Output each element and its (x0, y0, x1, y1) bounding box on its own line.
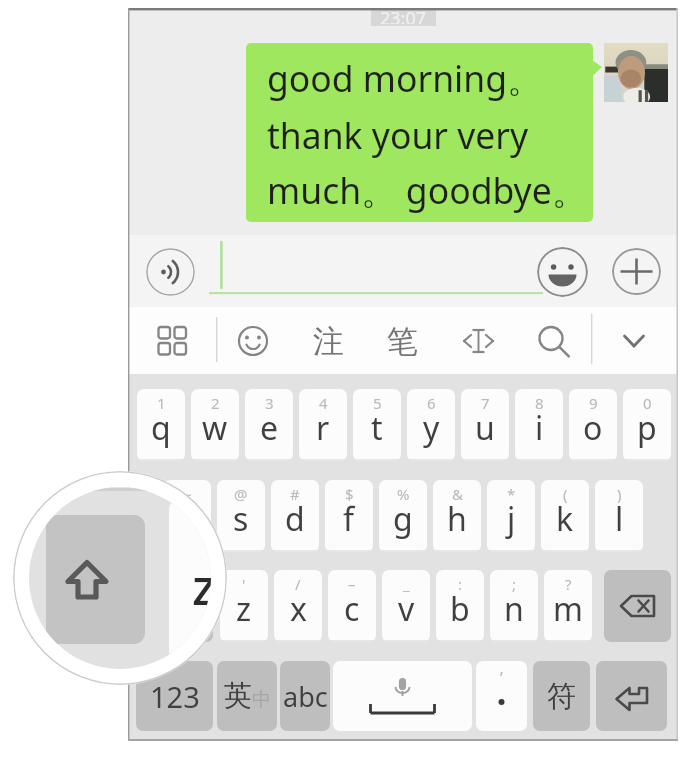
button[interactable]: Enter (596, 661, 667, 731)
staticText: ’ (500, 667, 503, 689)
staticText: g (393, 497, 413, 541)
button[interactable]: Message input (209, 238, 543, 296)
staticText: o (583, 406, 603, 450)
staticText: x (290, 587, 307, 631)
staticText: _ (403, 574, 410, 594)
button[interactable]: Search (531, 319, 575, 363)
staticText: @ (234, 484, 248, 504)
button[interactable]: 123 (136, 661, 213, 731)
staticText: : (458, 574, 463, 594)
button[interactable]: $ (325, 480, 373, 552)
button[interactable]: Emoji panel (231, 319, 275, 363)
button[interactable]: Contact avatar (604, 43, 668, 102)
button[interactable]: 4 (299, 389, 347, 461)
button[interactable]: Delete (604, 570, 671, 642)
button[interactable]: good morning。 thank your very much。 good… (246, 43, 593, 222)
button[interactable]: 9 (569, 389, 617, 461)
staticText: z (192, 552, 211, 620)
staticText: q (151, 406, 171, 450)
button[interactable]: 2 (191, 389, 239, 461)
staticText: l (615, 497, 624, 541)
staticText: v (398, 587, 415, 631)
button[interactable]: Switch language (217, 661, 277, 731)
staticText: ~ (183, 484, 192, 504)
staticText: 23:07 (380, 6, 427, 24)
button[interactable]: Voice message (146, 248, 195, 296)
staticText: d (285, 497, 305, 541)
staticText: abc (283, 678, 328, 715)
button[interactable]: _ (382, 570, 430, 642)
staticText: 注 (313, 322, 344, 361)
button[interactable]: @ (217, 480, 265, 552)
staticText: * (507, 484, 516, 504)
button[interactable]: ~ (163, 480, 211, 552)
staticText: ' (242, 574, 246, 594)
staticText: # (290, 484, 300, 504)
staticText: j (507, 497, 516, 541)
staticText: 英 (224, 678, 252, 713)
staticText: 中 (252, 688, 271, 712)
staticText: 3 (265, 393, 274, 413)
button[interactable]: # (271, 480, 319, 552)
button[interactable]: – (328, 570, 376, 642)
button[interactable]: Input methods (150, 319, 194, 363)
button[interactable]: / (274, 570, 322, 642)
staticText: 123 (150, 677, 200, 716)
staticText: z (236, 587, 252, 631)
staticText: h (447, 497, 467, 541)
staticText: % (397, 484, 410, 504)
staticText: b (450, 587, 470, 631)
staticText: r (316, 406, 330, 450)
staticText: / (295, 574, 301, 594)
staticText: n (504, 587, 524, 631)
staticText: 2 (211, 393, 220, 413)
button[interactable]: Space (333, 661, 472, 731)
button[interactable]: 0 (623, 389, 671, 461)
staticText: 6 (427, 393, 436, 413)
button[interactable]: Hide keyboard (612, 319, 656, 363)
button[interactable]: ; (490, 570, 538, 642)
staticText: f (343, 497, 355, 541)
button[interactable]: abc (280, 661, 330, 731)
button[interactable]: * (487, 480, 535, 552)
button[interactable]: More functions (612, 248, 661, 295)
button[interactable]: 8 (515, 389, 563, 461)
button[interactable]: 5 (353, 389, 401, 461)
button[interactable]: & (433, 480, 481, 552)
staticText: good morning。 thank your very much。 good… (267, 54, 588, 215)
staticText: ( (563, 484, 568, 504)
button[interactable]: ? (544, 570, 592, 642)
staticText: 笔 (387, 322, 418, 361)
button[interactable]: 6 (407, 389, 455, 461)
staticText: 0 (643, 393, 652, 413)
button[interactable]: 7 (461, 389, 509, 461)
staticText: i (535, 406, 544, 450)
button[interactable]: 符 (533, 661, 590, 731)
button[interactable]: Period (476, 661, 527, 731)
button[interactable]: ' (220, 570, 268, 642)
button[interactable]: : (436, 570, 484, 642)
staticText: 符 (547, 678, 576, 715)
staticText: $ (345, 484, 354, 504)
button[interactable]: 1 (137, 389, 185, 461)
button[interactable]: Emoji (537, 247, 588, 297)
button[interactable]: 笔 (380, 318, 424, 364)
button[interactable]: 注 (306, 318, 350, 364)
button[interactable]: ) (595, 480, 643, 552)
button[interactable]: % (379, 480, 427, 552)
staticText: p (637, 406, 657, 450)
button[interactable]: 3 (245, 389, 293, 461)
staticText: w (202, 406, 228, 450)
staticText: k (556, 497, 574, 541)
button[interactable]: Shift (137, 570, 213, 642)
staticText: 4 (319, 393, 328, 413)
staticText: t (371, 406, 383, 450)
button[interactable]: Text cursor control (456, 319, 500, 363)
staticText: 8 (535, 393, 544, 413)
staticText: s (233, 497, 249, 541)
button[interactable]: ( (541, 480, 589, 552)
staticText: 1 (157, 393, 166, 413)
staticText: & (452, 484, 463, 504)
staticText: m (553, 587, 583, 631)
staticText: 7 (481, 393, 490, 413)
